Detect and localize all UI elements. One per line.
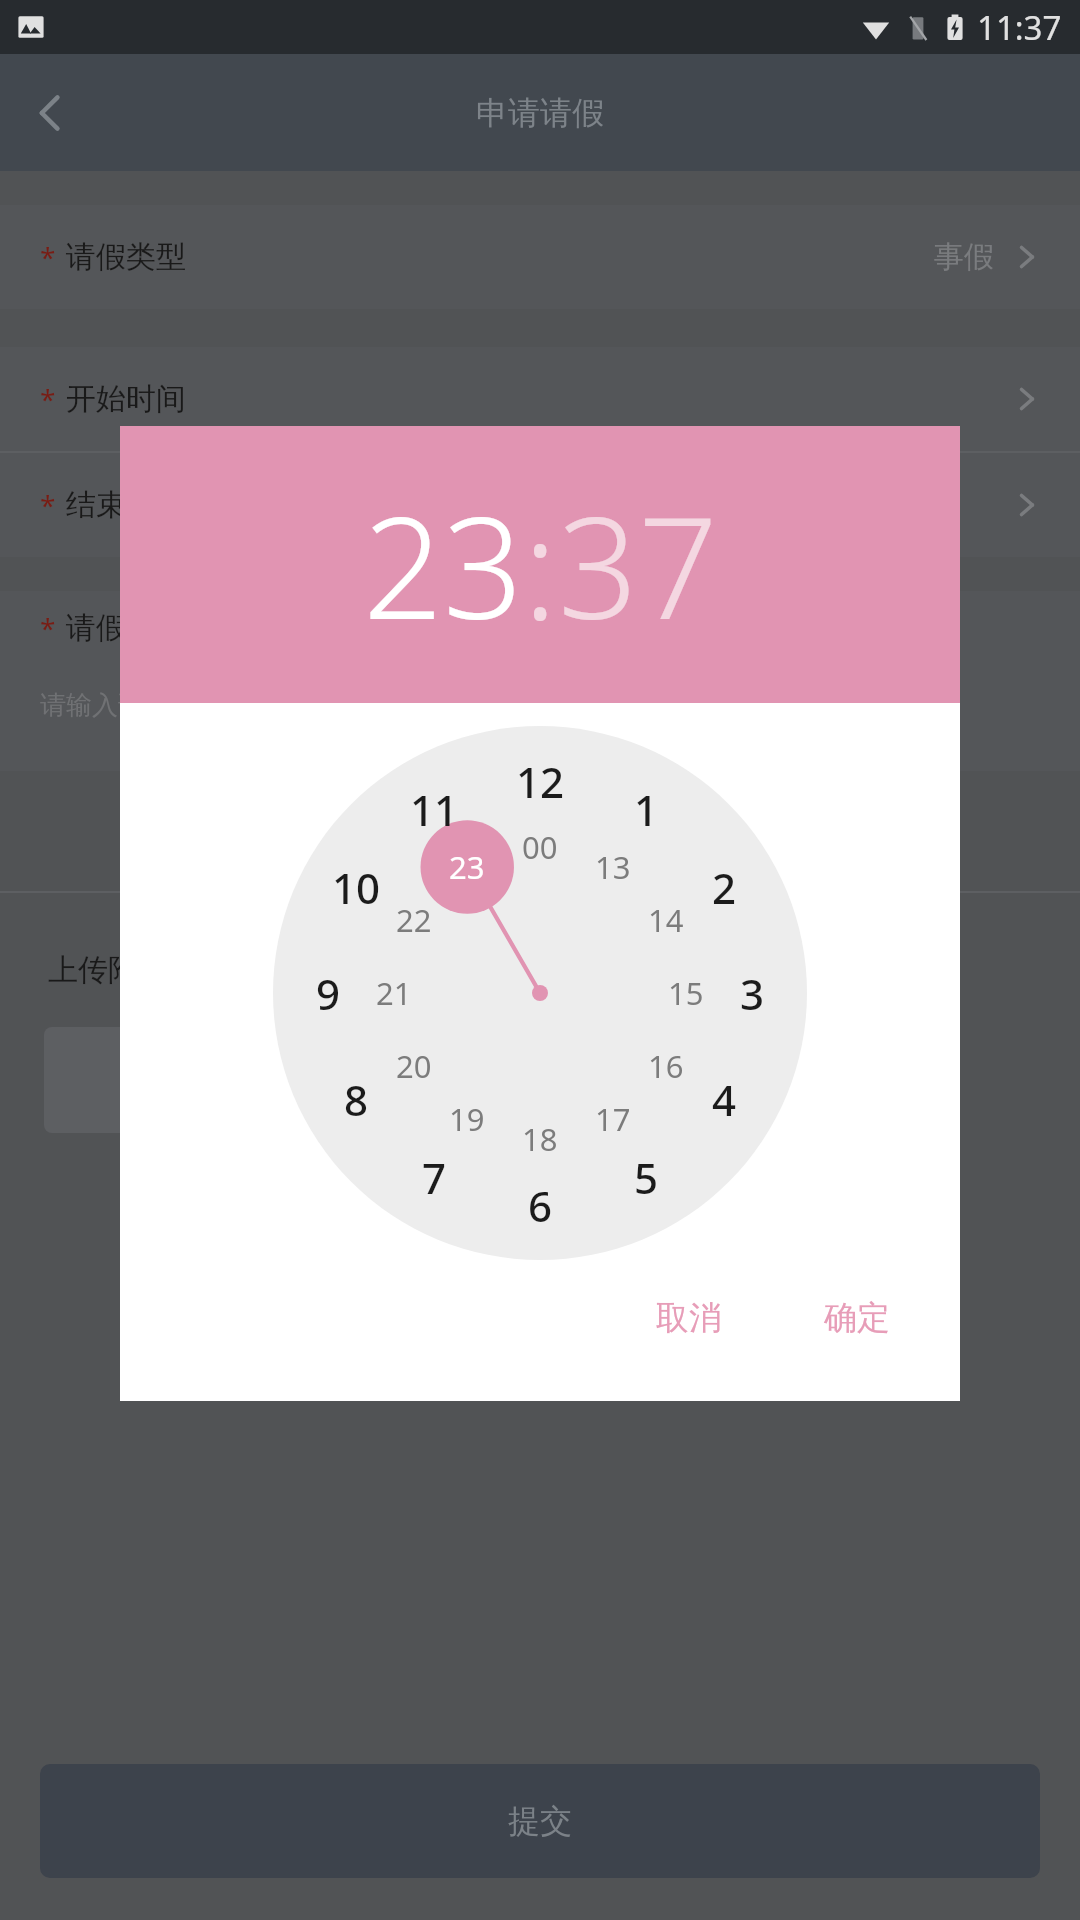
staticText: 10 <box>332 859 381 916</box>
button[interactable]: 1 <box>608 771 684 847</box>
button[interactable]: * <box>0 347 1080 451</box>
staticText: * <box>40 380 56 418</box>
staticText: 申请请假 <box>476 93 604 133</box>
button[interactable]: 37 <box>558 469 718 660</box>
staticText: 6 <box>528 1177 553 1234</box>
staticText: 请假事由 <box>66 609 186 647</box>
staticText: 9 <box>316 965 341 1022</box>
button[interactable]: Back <box>14 76 88 150</box>
staticText: 21 <box>376 972 412 1014</box>
button[interactable]: 7 <box>396 1139 472 1215</box>
staticText: 37 <box>558 469 718 660</box>
button[interactable]: 4 <box>686 1061 762 1137</box>
staticText: 12 <box>516 753 565 810</box>
staticText: 开始时间 <box>66 380 186 418</box>
button[interactable]: Add attachment <box>44 1027 150 1133</box>
button[interactable]: 2 <box>686 849 762 925</box>
staticText: 22 <box>396 899 432 941</box>
staticText: 17 <box>595 1098 631 1140</box>
staticText: 16 <box>648 1045 684 1087</box>
button[interactable]: 确定 <box>798 1283 916 1353</box>
staticText: 20 <box>396 1045 432 1087</box>
button[interactable]: 19 <box>429 1081 505 1157</box>
staticText: 13 <box>595 846 631 888</box>
staticText: 00 <box>522 826 558 868</box>
button[interactable]: 5 <box>608 1139 684 1215</box>
button[interactable]: 11 <box>396 771 472 847</box>
button[interactable]: * <box>0 205 1080 309</box>
button[interactable]: 8 <box>318 1061 394 1137</box>
staticText: 8 <box>344 1071 369 1128</box>
button[interactable]: 12 <box>502 743 578 819</box>
staticText: 19 <box>449 1098 485 1140</box>
staticText: 请假类型 <box>66 238 186 276</box>
staticText: 事假 <box>934 238 994 276</box>
staticText: : <box>523 469 558 660</box>
button[interactable]: 15 <box>648 955 724 1031</box>
button[interactable]: 6 <box>502 1167 578 1243</box>
staticText: 18 <box>522 1118 558 1160</box>
button[interactable]: 18 <box>502 1101 578 1177</box>
button[interactable]: 17 <box>575 1081 651 1157</box>
staticText: 23 <box>363 469 523 660</box>
button[interactable]: 23 <box>363 469 523 660</box>
staticText: * <box>40 609 56 647</box>
staticText: 4 <box>712 1071 737 1128</box>
button[interactable]: 10 <box>318 849 394 925</box>
staticText: 结束时间 <box>66 486 186 524</box>
button[interactable]: * <box>0 453 1080 557</box>
button[interactable]: 23 <box>429 829 505 905</box>
staticText: 23 <box>449 846 485 888</box>
staticText: 请输入请假事由 <box>40 689 222 722</box>
button[interactable]: 提交 <box>40 1764 1040 1878</box>
button[interactable]: 9 <box>290 955 366 1031</box>
staticText: * <box>40 238 56 276</box>
staticText: * <box>40 486 56 524</box>
staticText: 1 <box>634 781 659 838</box>
button[interactable]: 13 <box>575 829 651 905</box>
button[interactable]: 22 <box>376 882 452 958</box>
button[interactable]: 00 <box>502 809 578 885</box>
staticText: 14 <box>648 899 684 941</box>
staticText: 提交 <box>508 1801 572 1841</box>
staticText: 3 <box>740 965 765 1022</box>
staticText: 11 <box>410 781 459 838</box>
button[interactable]: 3 <box>714 955 790 1031</box>
staticText: 取消 <box>656 1297 722 1339</box>
button[interactable]: 16 <box>628 1028 704 1104</box>
button[interactable]: 21 <box>356 955 432 1031</box>
button[interactable]: 取消 <box>630 1283 748 1353</box>
button[interactable]: 20 <box>376 1028 452 1104</box>
staticText: 11:37 <box>977 5 1062 50</box>
staticText: 7 <box>422 1149 447 1206</box>
staticText: 上传附件 <box>48 951 168 989</box>
staticText: 确定 <box>824 1297 890 1339</box>
button[interactable]: 14 <box>628 882 704 958</box>
staticText: 2 <box>712 859 737 916</box>
staticText: 15 <box>668 972 704 1014</box>
staticText: 5 <box>634 1149 659 1206</box>
